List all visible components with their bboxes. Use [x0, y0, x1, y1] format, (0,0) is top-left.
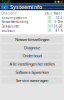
staticText: Onderdeel [2, 12, 18, 15]
staticText: OK [47, 16, 51, 19]
staticText: Alle instellingen herstellen [9, 61, 54, 67]
staticText: OK [47, 20, 51, 24]
staticText: Waarde [53, 12, 62, 15]
button[interactable]: Service aanvragen [2, 77, 62, 84]
staticText: Onderhoud [22, 53, 41, 58]
staticText: 5 GHz [54, 20, 62, 24]
staticText: Netwerkinstellingen [15, 37, 49, 42]
button[interactable]: Diagnose [2, 44, 62, 51]
staticText: Systeeminfo [10, 3, 42, 11]
staticText: Netwerkverbinding [2, 20, 29, 24]
staticText: 12:45 [1, 0, 10, 4]
staticText: OK [47, 25, 51, 28]
button[interactable]: Netwerkinstellingen [2, 36, 62, 43]
staticText: Status [44, 12, 51, 15]
staticText: Besturingssysteem [2, 16, 27, 19]
staticText: Software bijwerken [15, 70, 48, 75]
staticText: OK [47, 29, 51, 32]
staticText: ‹ [4, 3, 6, 11]
staticText: Accustatus [2, 29, 15, 32]
staticText: 87 % [55, 29, 62, 32]
button[interactable]: Terug [1, 4, 8, 9]
staticText: 14.2 [55, 16, 62, 19]
button[interactable]: Onderhoud [2, 52, 62, 59]
staticText: Service aanvragen [16, 78, 48, 83]
button[interactable]: Alle instellingen herstellen [2, 61, 62, 67]
staticText: Opslagruimte [2, 25, 20, 28]
button[interactable]: Software bijwerken [2, 69, 62, 75]
staticText: Diagnose [24, 45, 40, 50]
staticText: 128 GB [51, 25, 62, 28]
